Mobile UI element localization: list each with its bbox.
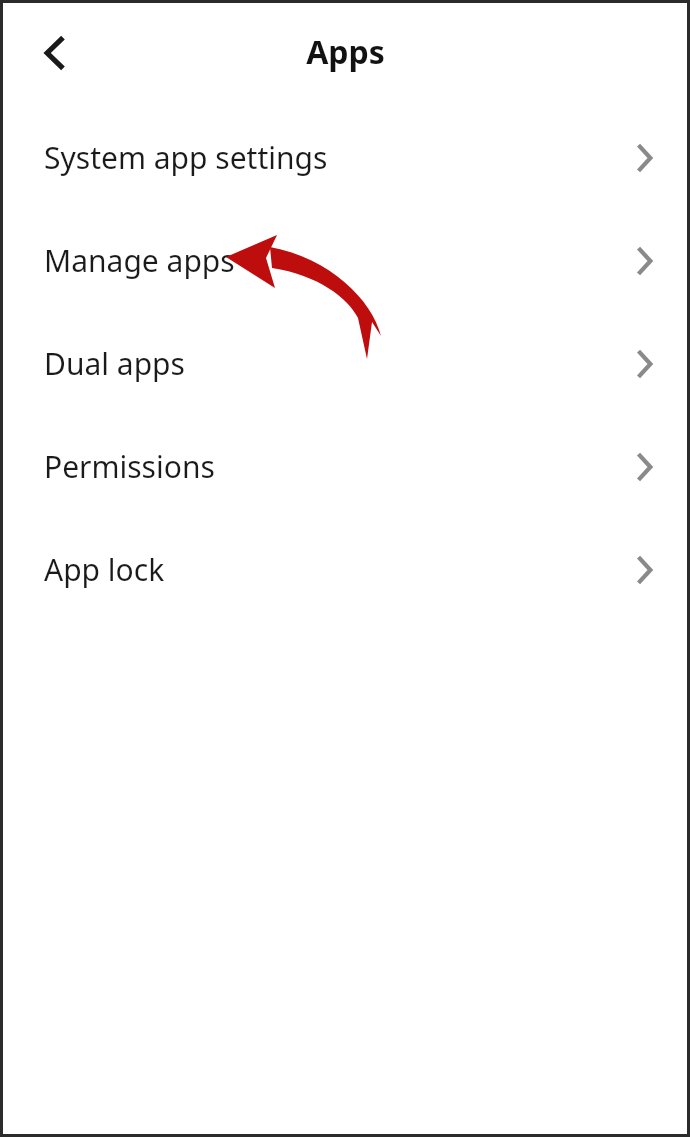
staticText: Apps [306, 30, 385, 74]
button[interactable]: Dual apps [0, 312, 690, 415]
button[interactable]: Permissions [0, 415, 690, 518]
staticText: Manage apps [44, 240, 235, 281]
staticText: System app settings [44, 137, 328, 178]
staticText: Dual apps [44, 343, 185, 384]
button[interactable]: Manage apps [0, 209, 690, 312]
button[interactable]: System app settings [0, 106, 690, 209]
button[interactable]: Back [22, 20, 88, 86]
staticText: Permissions [44, 446, 215, 487]
button[interactable]: App lock [0, 518, 690, 621]
staticText: App lock [44, 549, 165, 590]
